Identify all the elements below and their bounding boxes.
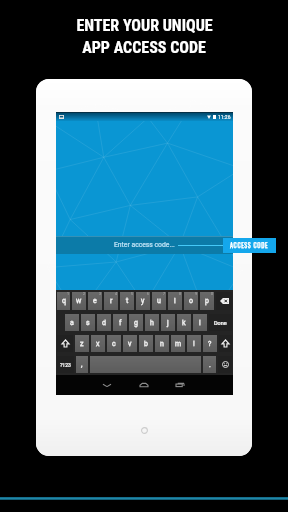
button[interactable]: Shift	[219, 335, 232, 352]
button[interactable]: Emoji	[218, 356, 232, 373]
staticText: 1	[67, 292, 69, 296]
staticText: c	[112, 340, 116, 348]
staticText: k	[182, 319, 186, 327]
button[interactable]: k	[177, 314, 191, 331]
staticText: s	[86, 319, 90, 327]
button[interactable]: x	[91, 335, 105, 352]
staticText: a	[70, 319, 74, 327]
button[interactable]: Back	[99, 375, 115, 395]
staticText: f	[119, 319, 122, 327]
button[interactable]: Enter access code...	[56, 236, 233, 254]
staticText: w	[76, 297, 82, 305]
button[interactable]: !	[187, 335, 201, 352]
button[interactable]: w	[72, 292, 86, 310]
staticText: m	[175, 340, 182, 348]
button[interactable]: ,	[76, 356, 88, 373]
staticText: j	[167, 319, 169, 327]
button[interactable]: ACCESS CODE	[223, 238, 276, 253]
button[interactable]: Shift	[57, 335, 73, 352]
button[interactable]: g	[129, 314, 143, 331]
button[interactable]: r	[104, 292, 118, 310]
staticText: r	[110, 297, 113, 305]
staticText: g	[134, 319, 138, 327]
button[interactable]: p	[200, 292, 214, 310]
button[interactable]: y	[136, 292, 150, 310]
staticText: ?	[208, 340, 212, 348]
button[interactable]: u	[152, 292, 166, 310]
staticText: o	[189, 297, 193, 305]
staticText: z	[80, 340, 84, 348]
button[interactable]: v	[123, 335, 137, 352]
staticText: d	[102, 319, 106, 327]
button[interactable]: n	[155, 335, 169, 352]
button[interactable]: .	[203, 356, 216, 373]
staticText: v	[128, 340, 132, 348]
staticText: b	[144, 340, 148, 348]
button[interactable]: Recents	[172, 375, 188, 395]
staticText: 3	[99, 292, 101, 296]
button[interactable]	[90, 356, 201, 373]
staticText: 2	[83, 292, 85, 296]
staticText: i	[174, 297, 176, 305]
staticText: ,	[81, 361, 83, 369]
button[interactable]: a	[65, 314, 79, 331]
staticText: h	[150, 319, 154, 327]
button[interactable]: f	[113, 314, 127, 331]
button[interactable]: m	[171, 335, 185, 352]
button[interactable]: Done	[209, 314, 232, 331]
staticText: 11:26	[218, 114, 231, 120]
button[interactable]: d	[97, 314, 111, 331]
staticText: q	[62, 297, 66, 305]
staticText: .	[209, 361, 211, 369]
button[interactable]: b	[139, 335, 153, 352]
staticText: y	[141, 297, 145, 305]
staticText: u	[157, 297, 161, 305]
staticText: 9	[195, 292, 197, 296]
staticText: t	[126, 297, 129, 305]
button[interactable]: l	[193, 314, 207, 331]
staticText: p	[205, 297, 209, 305]
button[interactable]: s	[81, 314, 95, 331]
button[interactable]: z	[75, 335, 89, 352]
staticText: ACCESS CODE	[230, 241, 269, 250]
staticText: 7	[163, 292, 165, 296]
staticText: x	[96, 340, 100, 348]
staticText: ?123	[60, 362, 71, 368]
button[interactable]: Home	[136, 375, 152, 395]
button[interactable]: i	[168, 292, 182, 310]
staticText: 0	[211, 292, 213, 296]
button[interactable]: e	[88, 292, 102, 310]
button[interactable]: j	[161, 314, 175, 331]
staticText: l	[199, 319, 201, 327]
staticText: 6	[147, 292, 149, 296]
staticText: e	[93, 297, 97, 305]
staticText: !	[193, 340, 195, 348]
staticText: Done	[214, 320, 227, 326]
button[interactable]: c	[107, 335, 121, 352]
staticText: n	[160, 340, 164, 348]
button[interactable]: h	[145, 314, 159, 331]
staticText: 5	[131, 292, 133, 296]
staticText: ENTER YOUR UNIQUE	[76, 16, 213, 35]
button[interactable]: q	[57, 292, 70, 310]
button[interactable]: ?	[203, 335, 217, 352]
button[interactable]: Backspace	[216, 292, 232, 310]
staticText: 8	[179, 292, 181, 296]
button[interactable]: Symbols	[57, 356, 74, 373]
staticText: Enter access code...	[114, 241, 175, 249]
staticText: APP ACCESS CODE	[82, 38, 206, 57]
button[interactable]: t	[120, 292, 134, 310]
button[interactable]: o	[184, 292, 198, 310]
staticText: 4	[115, 292, 117, 296]
